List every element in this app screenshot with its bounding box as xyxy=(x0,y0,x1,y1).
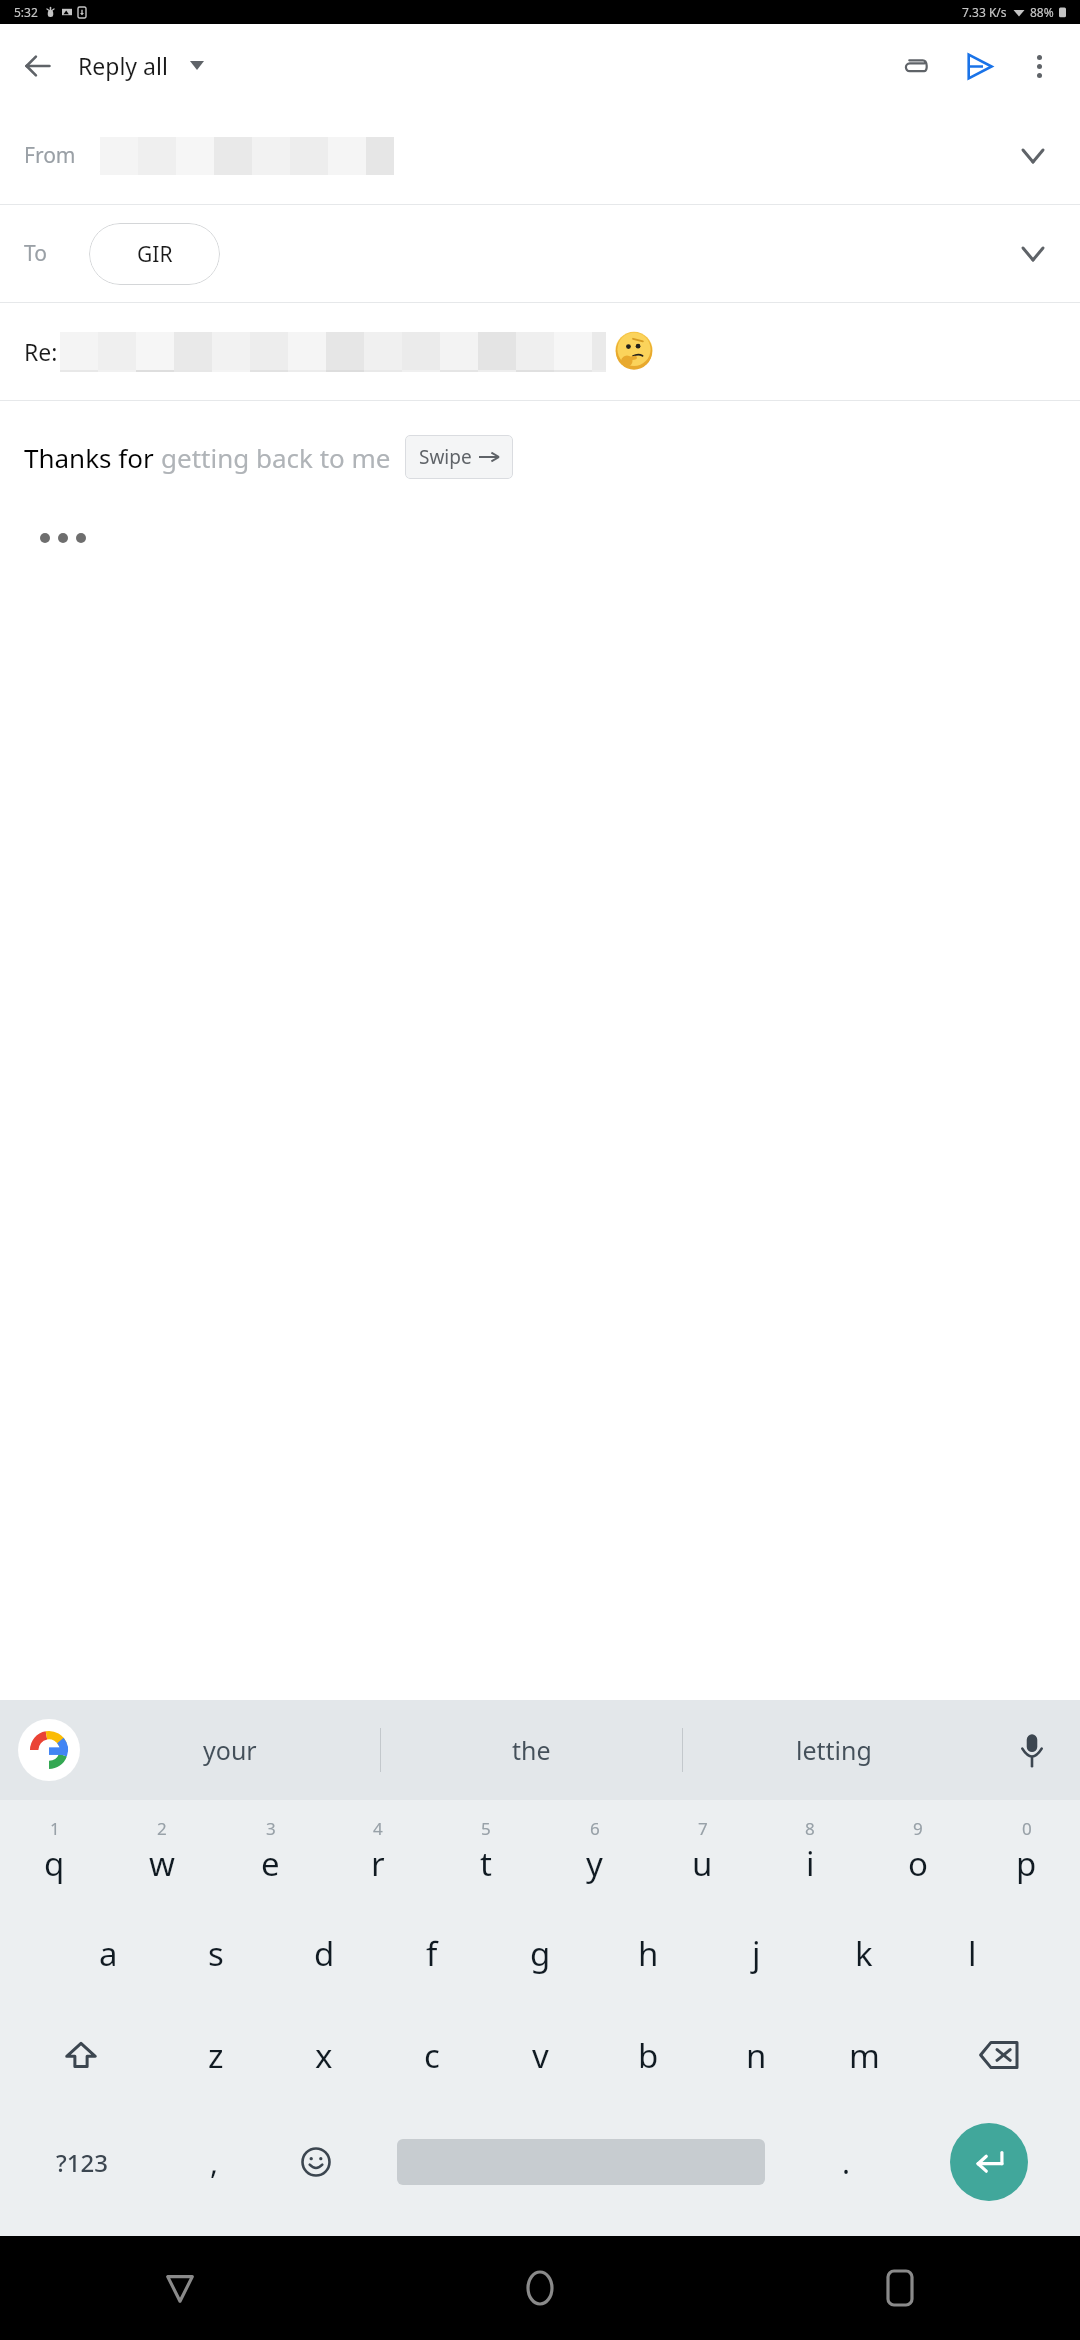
button[interactable]: a xyxy=(54,1902,162,2004)
button[interactable]: Show quoted text xyxy=(34,527,92,549)
button[interactable]: Swipe xyxy=(405,435,513,479)
staticText: m xyxy=(849,2033,880,2078)
staticText: getting back to me xyxy=(161,440,391,475)
button[interactable]: More options xyxy=(1014,41,1064,91)
staticText: e xyxy=(261,1841,280,1886)
button[interactable]: j xyxy=(702,1902,810,2004)
staticText: From xyxy=(24,141,76,170)
button[interactable]: v xyxy=(486,2004,594,2106)
button[interactable]: ?123 xyxy=(0,2106,163,2218)
staticText: n xyxy=(746,2033,767,2078)
staticText: b xyxy=(638,2033,659,2078)
staticText: a xyxy=(99,1931,118,1976)
staticText: , xyxy=(210,2142,219,2183)
button[interactable]: Shift xyxy=(0,2004,162,2106)
button[interactable]: f xyxy=(378,1902,486,2004)
staticText: 88% xyxy=(1030,4,1054,20)
staticText: 0 xyxy=(1022,1817,1032,1840)
button[interactable]: Expand recipients xyxy=(1010,133,1056,179)
staticText: i xyxy=(806,1841,815,1886)
button[interactable]: your xyxy=(80,1700,380,1800)
staticText: 3 xyxy=(266,1817,276,1840)
button[interactable]: s xyxy=(162,1902,270,2004)
staticText: Swipe xyxy=(419,444,472,470)
button[interactable]: GIR xyxy=(89,223,220,285)
button[interactable]: Send xyxy=(954,41,1004,91)
staticText: c xyxy=(424,2033,440,2078)
button[interactable]: b xyxy=(594,2004,702,2106)
staticText: p xyxy=(1016,1841,1037,1886)
staticText: 5:32 xyxy=(14,4,38,20)
staticText: o xyxy=(908,1841,928,1886)
staticText: 6 xyxy=(590,1817,600,1840)
button[interactable]: 1 xyxy=(0,1800,108,1902)
button[interactable] xyxy=(367,2106,795,2218)
staticText: 2 xyxy=(157,1817,167,1840)
button[interactable]: To xyxy=(0,205,1080,302)
staticText: 7 xyxy=(698,1817,708,1840)
staticText: Re: xyxy=(24,336,58,367)
staticText: your xyxy=(203,1733,257,1767)
button[interactable]: Enter xyxy=(950,2123,1028,2201)
button[interactable]: k xyxy=(810,1902,918,2004)
button[interactable]: the xyxy=(381,1700,682,1800)
button[interactable]: 3 xyxy=(216,1800,324,1902)
button[interactable]: 7 xyxy=(648,1800,756,1902)
button[interactable]: m xyxy=(810,2004,918,2106)
button[interactable]: l xyxy=(918,1902,1026,2004)
button[interactable]: 5 xyxy=(432,1800,540,1902)
staticText: l xyxy=(968,1931,977,1976)
staticText: To xyxy=(24,239,47,268)
staticText: 1 xyxy=(50,1817,60,1840)
staticText: t xyxy=(480,1841,492,1886)
button[interactable]: Back xyxy=(10,38,66,94)
button[interactable]: z xyxy=(162,2004,270,2106)
button[interactable]: 9 xyxy=(864,1800,972,1902)
staticText: Reply all xyxy=(78,50,168,81)
button[interactable]: Emoji xyxy=(265,2106,367,2218)
staticText: f xyxy=(426,1931,438,1976)
staticText: 8 xyxy=(805,1817,815,1840)
staticText: u xyxy=(692,1841,713,1886)
button[interactable]: Google xyxy=(18,1719,80,1781)
staticText: ?123 xyxy=(56,2146,108,2179)
button[interactable]: c xyxy=(378,2004,486,2106)
staticText: 7.33 K/s xyxy=(962,4,1007,20)
staticText: z xyxy=(208,2033,224,2078)
button[interactable]: 2 xyxy=(108,1800,216,1902)
staticText: v xyxy=(532,2033,549,2078)
staticText: y xyxy=(586,1841,603,1886)
button[interactable]: x xyxy=(270,2004,378,2106)
button[interactable]: Home xyxy=(360,2236,720,2340)
staticText: . xyxy=(842,2142,851,2183)
button[interactable]: 6 xyxy=(540,1800,648,1902)
button[interactable]: h xyxy=(594,1902,702,2004)
staticText: w xyxy=(149,1841,175,1886)
button[interactable]: . xyxy=(795,2106,897,2218)
button[interactable]: Back xyxy=(0,2236,360,2340)
button[interactable]: From xyxy=(0,107,1080,204)
button[interactable]: Reply all xyxy=(74,42,208,89)
button[interactable]: Expand to field xyxy=(1010,231,1056,277)
button[interactable]: Recent apps xyxy=(720,2236,1080,2340)
staticText: letting xyxy=(796,1733,872,1767)
button[interactable]: letting xyxy=(683,1700,984,1800)
button[interactable]: Voice input xyxy=(984,1700,1080,1800)
button[interactable]: d xyxy=(270,1902,378,2004)
staticText: 9 xyxy=(913,1817,923,1840)
button[interactable]: Attach file xyxy=(890,41,940,91)
button[interactable]: 0 xyxy=(972,1800,1080,1902)
button[interactable]: n xyxy=(702,2004,810,2106)
button[interactable]: 8 xyxy=(756,1800,864,1902)
staticText: h xyxy=(638,1931,659,1976)
button[interactable]: Backspace xyxy=(918,2004,1080,2106)
button[interactable]: , xyxy=(163,2106,265,2218)
staticText: Thanks for xyxy=(24,440,161,475)
staticText: d xyxy=(314,1931,335,1976)
button[interactable]: g xyxy=(486,1902,594,2004)
button[interactable]: Re: xyxy=(0,303,1080,400)
staticText: 5 xyxy=(481,1817,491,1840)
button[interactable]: 4 xyxy=(324,1800,432,1902)
staticText: j xyxy=(752,1931,761,1976)
staticText: q xyxy=(44,1841,65,1886)
